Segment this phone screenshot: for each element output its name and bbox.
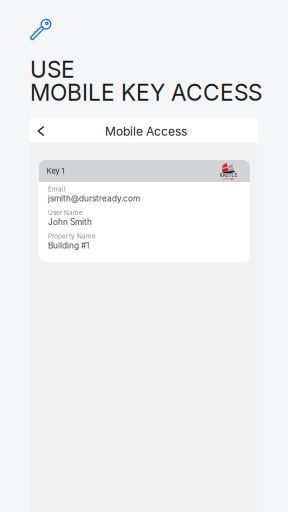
staticText: SYSTEMS: [222, 178, 235, 180]
staticText: Property Name: [48, 232, 96, 240]
staticText: Email: [48, 185, 66, 193]
staticText: KASTLE: [219, 172, 237, 178]
staticText: Building #1: [48, 240, 89, 250]
staticText: MOBILE KEY ACCESS: [30, 79, 262, 106]
staticText: USE: [30, 56, 75, 83]
staticText: jsmith@durstready.com: [48, 193, 140, 203]
button[interactable]: Back: [30, 119, 52, 143]
staticText: User Name: [48, 209, 83, 216]
staticText: John Smith: [48, 217, 92, 227]
staticText: Mobile Access: [105, 124, 187, 139]
staticText: Key 1: [46, 166, 64, 176]
